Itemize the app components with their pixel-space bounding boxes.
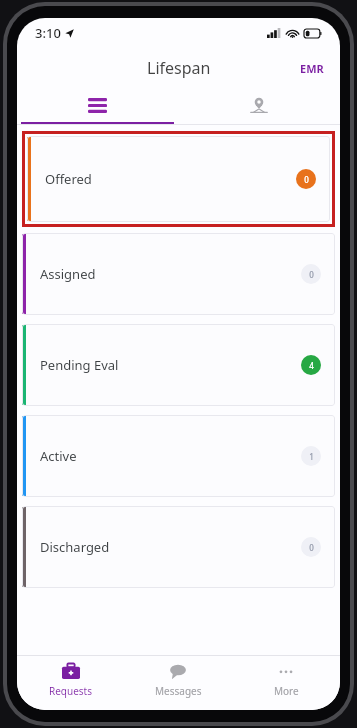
staticText: Lifespan bbox=[147, 57, 211, 79]
button[interactable]: More bbox=[232, 656, 340, 710]
staticText: Discharged bbox=[40, 538, 110, 556]
button[interactable]: List view bbox=[17, 88, 178, 122]
staticText: 0 bbox=[304, 174, 309, 185]
staticText: EMR bbox=[300, 61, 324, 76]
button[interactable]: Discharged bbox=[22, 506, 335, 588]
button[interactable]: Messages bbox=[124, 656, 232, 710]
staticText: More bbox=[274, 684, 299, 698]
staticText: Offered bbox=[45, 170, 92, 188]
staticText: Active bbox=[40, 447, 77, 465]
staticText: Assigned bbox=[40, 265, 96, 283]
button[interactable]: Map view bbox=[178, 88, 340, 122]
button[interactable]: Assigned bbox=[22, 233, 335, 315]
staticText: 4 bbox=[309, 360, 314, 371]
staticText: 0 bbox=[309, 542, 314, 553]
staticText: Pending Eval bbox=[40, 356, 119, 374]
button[interactable]: Pending Eval bbox=[22, 324, 335, 406]
staticText: 3:10 bbox=[35, 24, 61, 42]
staticText: 0 bbox=[309, 269, 314, 280]
button[interactable]: EMR bbox=[284, 53, 340, 84]
button[interactable]: Offered bbox=[27, 136, 330, 222]
staticText: Messages bbox=[155, 684, 202, 698]
button[interactable]: Active bbox=[22, 415, 335, 497]
staticText: Requests bbox=[49, 684, 93, 698]
staticText: 1 bbox=[309, 451, 314, 462]
button[interactable]: Requests bbox=[17, 656, 124, 710]
